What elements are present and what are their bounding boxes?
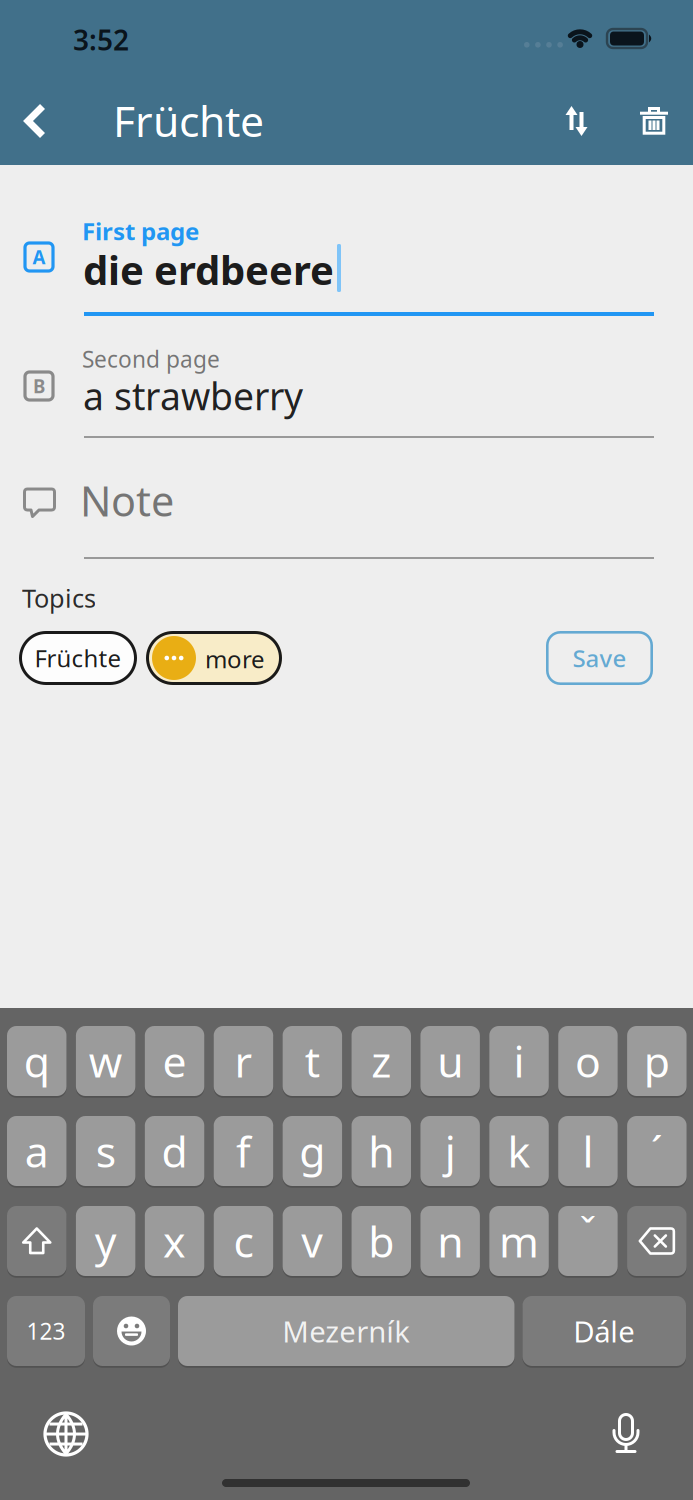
button[interactable]: Emoji	[93, 1296, 170, 1366]
button[interactable]: k	[489, 1116, 549, 1186]
button[interactable]: Caron	[558, 1206, 618, 1276]
staticText: t	[305, 1033, 320, 1089]
staticText: Früchte	[113, 92, 264, 149]
staticText: x	[163, 1213, 186, 1269]
button[interactable]: s	[76, 1116, 135, 1186]
staticText: Topics	[22, 581, 96, 615]
staticText: First page	[82, 215, 199, 247]
staticText: r	[234, 1033, 252, 1089]
button[interactable]: ´	[627, 1116, 687, 1186]
staticText: a	[25, 1123, 49, 1179]
button[interactable]: m	[489, 1206, 549, 1276]
button[interactable]: b	[351, 1206, 411, 1276]
staticText: k	[508, 1123, 531, 1179]
staticText: w	[89, 1033, 123, 1089]
button[interactable]: Dictation	[595, 1399, 657, 1467]
staticText: b	[368, 1213, 394, 1269]
staticText: o	[575, 1033, 601, 1089]
button[interactable]: Backspace	[627, 1206, 687, 1276]
staticText: l	[582, 1123, 593, 1179]
staticText: Dále	[573, 1311, 635, 1350]
button[interactable]: n	[420, 1206, 480, 1276]
button[interactable]: Dále	[522, 1296, 686, 1366]
staticText: B	[33, 374, 45, 398]
staticText: s	[96, 1123, 116, 1179]
staticText: more	[205, 643, 265, 675]
button[interactable]: y	[76, 1206, 135, 1276]
button[interactable]: r	[214, 1026, 273, 1096]
button[interactable]: v	[283, 1206, 342, 1276]
staticText: a strawberry	[83, 371, 303, 421]
staticText: q	[24, 1033, 50, 1089]
button[interactable]: t	[283, 1026, 342, 1096]
staticText: i	[514, 1033, 525, 1089]
button[interactable]: l	[558, 1116, 618, 1186]
staticText: Note	[80, 473, 174, 528]
staticText: m	[499, 1213, 539, 1269]
button[interactable]: z	[351, 1026, 411, 1096]
button[interactable]: j	[420, 1116, 480, 1186]
staticText: z	[371, 1033, 391, 1089]
button[interactable]: w	[76, 1026, 135, 1096]
staticText: u	[437, 1033, 463, 1089]
button[interactable]: Next keyboard	[33, 1401, 99, 1467]
staticText: Mezerník	[282, 1311, 410, 1350]
button[interactable]: p	[627, 1026, 687, 1096]
staticText: h	[368, 1123, 394, 1179]
staticText: j	[445, 1123, 456, 1179]
staticText: e	[163, 1033, 187, 1089]
button[interactable]: h	[351, 1116, 411, 1186]
button[interactable]: Früchte	[19, 631, 137, 685]
button[interactable]: e	[145, 1026, 204, 1096]
staticText: p	[644, 1033, 670, 1089]
button[interactable]: a	[7, 1116, 66, 1186]
staticText: die erdbeere	[83, 243, 334, 296]
staticText: Second page	[82, 344, 220, 374]
staticText: Früchte	[34, 642, 121, 674]
staticText: f	[236, 1123, 251, 1179]
staticText: c	[233, 1213, 253, 1269]
button[interactable]: c	[214, 1206, 273, 1276]
staticText: g	[299, 1123, 325, 1179]
button[interactable]: Numbers	[7, 1296, 85, 1366]
staticText: 3:52	[73, 21, 129, 58]
button[interactable]: Save	[546, 631, 653, 685]
button[interactable]: Swap pages	[552, 96, 600, 146]
button[interactable]: f	[214, 1116, 273, 1186]
staticText: 123	[26, 1316, 65, 1346]
button[interactable]: o	[558, 1026, 618, 1096]
button[interactable]: d	[145, 1116, 204, 1186]
staticText: A	[32, 245, 45, 269]
button[interactable]: Mezerník	[178, 1296, 514, 1366]
staticText: y	[95, 1213, 117, 1269]
staticText: Save	[572, 642, 626, 674]
button[interactable]: u	[420, 1026, 480, 1096]
staticText: v	[301, 1213, 323, 1269]
staticText: n	[437, 1213, 463, 1269]
button[interactable]: i	[489, 1026, 549, 1096]
button[interactable]: more	[146, 631, 282, 685]
button[interactable]: Delete	[630, 97, 678, 147]
button[interactable]: Shift	[7, 1206, 66, 1276]
staticText: ˇ	[579, 1204, 596, 1257]
button[interactable]: x	[145, 1206, 204, 1276]
staticText: ´	[651, 1123, 663, 1179]
button[interactable]: g	[283, 1116, 342, 1186]
button[interactable]: Back	[11, 95, 59, 147]
button[interactable]: q	[7, 1026, 66, 1096]
staticText: d	[162, 1123, 188, 1179]
